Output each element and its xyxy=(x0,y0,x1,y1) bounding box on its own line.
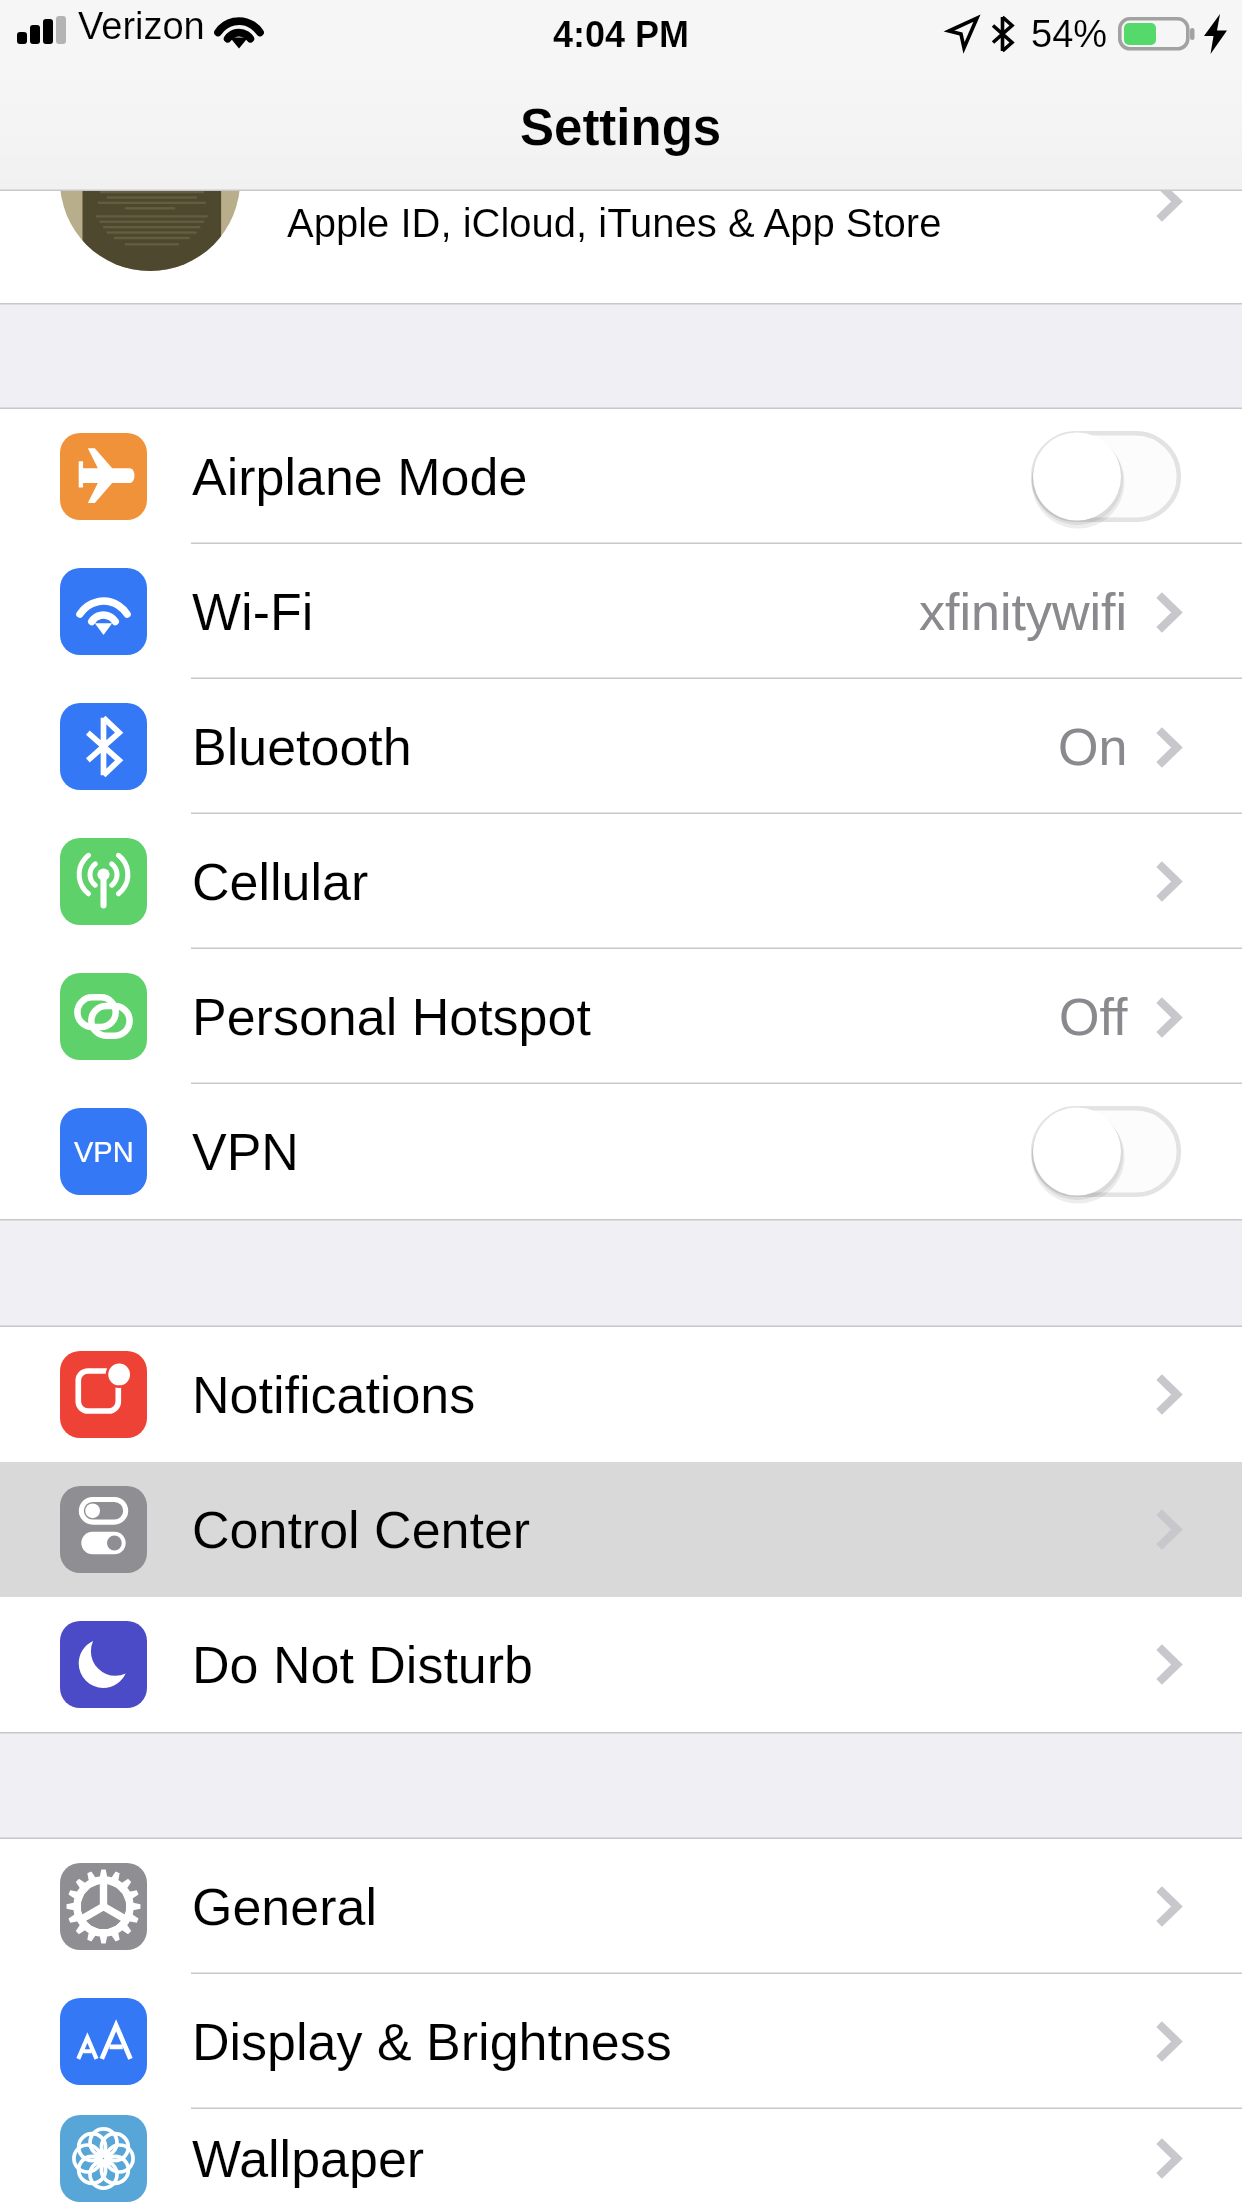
button[interactable]: Personal Hotspot xyxy=(0,949,1242,1084)
button[interactable]: Wi-Fi xyxy=(0,544,1242,679)
button[interactable]: Notifications xyxy=(0,1327,1242,1462)
button[interactable]: Cellular xyxy=(0,814,1242,949)
button[interactable]: General xyxy=(0,1839,1242,1974)
staticText: Cellular xyxy=(192,853,369,911)
button[interactable]: Do Not Disturb xyxy=(0,1597,1242,1732)
button[interactable]: Bluetooth xyxy=(0,679,1242,814)
button[interactable]: Apple ID, iCloud, iTunes & App Store xyxy=(0,191,1242,303)
button[interactable]: VPN xyxy=(0,1084,1242,1219)
button[interactable]: Wallpaper xyxy=(0,2109,1242,2208)
staticText: Notifications xyxy=(192,1366,476,1424)
staticText: 54% xyxy=(1031,13,1108,55)
button[interactable]: VPN switch, off xyxy=(1031,1106,1181,1197)
staticText: Display & Brightness xyxy=(192,2013,672,2071)
staticText: VPN xyxy=(192,1123,299,1181)
staticText: Airplane Mode xyxy=(192,448,528,506)
button[interactable]: Display & Brightness xyxy=(0,1974,1242,2109)
button[interactable]: Airplane Mode switch, off xyxy=(1031,431,1181,522)
staticText: xfinitywifi xyxy=(919,583,1128,641)
staticText: Do Not Disturb xyxy=(192,1636,533,1694)
staticText: Off xyxy=(1059,988,1128,1046)
staticText: Settings xyxy=(520,99,722,156)
staticText: Wallpaper xyxy=(192,2130,425,2188)
staticText: Control Center xyxy=(192,1501,531,1559)
staticText: General xyxy=(192,1878,377,1936)
staticText: 4:04 PM xyxy=(553,14,690,54)
staticText: On xyxy=(1058,718,1128,776)
staticText: Bluetooth xyxy=(192,718,412,776)
staticText: Wi-Fi xyxy=(192,583,314,641)
staticText: VPN xyxy=(74,1136,134,1168)
staticText: Apple ID, iCloud, iTunes & App Store xyxy=(287,201,942,246)
staticText: Personal Hotspot xyxy=(192,988,591,1046)
button[interactable]: Control Center xyxy=(0,1462,1242,1597)
button[interactable]: Airplane Mode xyxy=(0,409,1242,544)
staticText: Verizon xyxy=(78,5,205,47)
